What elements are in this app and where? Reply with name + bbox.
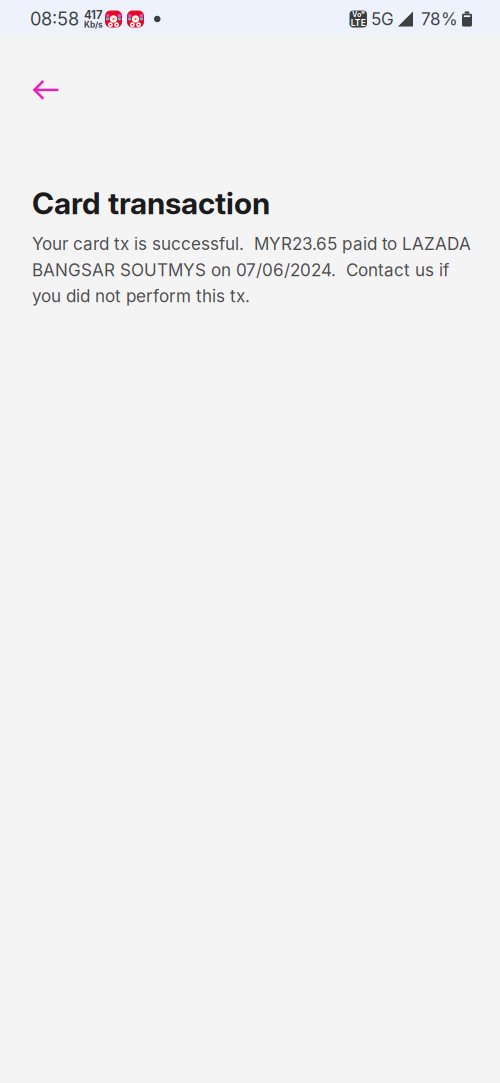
staticText: Kb/s — [84, 20, 103, 30]
staticText: Card transaction — [32, 185, 270, 221]
staticText: 08:58 — [30, 8, 79, 30]
staticText: 5G — [371, 9, 394, 29]
staticText: LTE — [351, 18, 366, 28]
staticText: Vo — [352, 10, 361, 19]
staticText: 417 — [84, 8, 103, 22]
staticText: Your card tx is successful. MYR23.65 pai… — [32, 233, 471, 306]
staticText: 78% — [421, 9, 458, 29]
button[interactable]: Back — [19, 66, 74, 114]
